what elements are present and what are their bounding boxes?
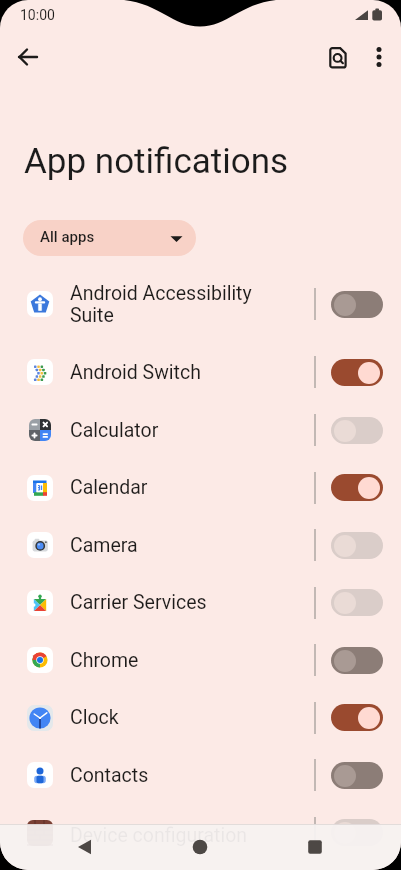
staticText: Device configuration (70, 824, 248, 847)
button[interactable]: Clock (0, 689, 401, 746)
button[interactable]: Device configuration (0, 804, 401, 861)
button[interactable] (331, 647, 383, 674)
staticText: Calculator (70, 419, 159, 442)
button[interactable] (331, 819, 383, 846)
button[interactable]: Carrier Services (0, 574, 401, 631)
staticText: Chrome (70, 649, 139, 672)
staticText: 10:00 (20, 7, 55, 23)
button[interactable]: Android Accessibility Suite (0, 270, 401, 338)
button[interactable] (331, 704, 383, 731)
staticText: Clock (70, 706, 119, 729)
button[interactable]: Calculator (0, 401, 401, 459)
staticText: Calendar (70, 476, 148, 499)
staticText: Android Accessibility Suite (70, 282, 252, 327)
staticText: Contacts (70, 764, 149, 787)
button[interactable] (331, 532, 383, 559)
button[interactable]: Camera (0, 516, 401, 574)
button[interactable] (70, 832, 100, 862)
button[interactable]: Chrome (0, 631, 401, 689)
staticText: Carrier Services (70, 591, 207, 614)
button[interactable] (323, 43, 351, 71)
button[interactable]: Contacts (0, 746, 401, 804)
button[interactable] (331, 359, 383, 386)
button[interactable] (331, 589, 383, 616)
button[interactable]: Android Switch (0, 343, 401, 401)
button[interactable]: All apps (23, 220, 196, 256)
button[interactable] (300, 832, 330, 862)
button[interactable] (331, 762, 383, 789)
button[interactable] (331, 291, 383, 318)
button[interactable] (365, 43, 393, 71)
button[interactable] (185, 832, 215, 862)
button[interactable] (14, 43, 42, 71)
staticText: Android Switch (70, 361, 201, 384)
staticText: Camera (70, 534, 138, 557)
button[interactable] (331, 417, 383, 444)
staticText: App notifications (24, 141, 289, 182)
button[interactable]: Calendar (0, 459, 401, 516)
staticText: All apps (40, 228, 95, 246)
button[interactable] (331, 474, 383, 501)
